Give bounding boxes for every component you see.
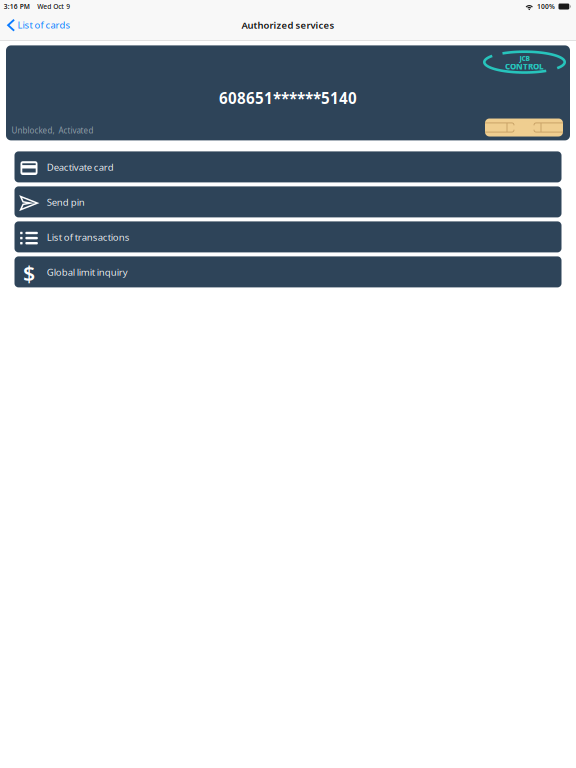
staticText: $ <box>23 259 35 287</box>
button[interactable]: Deactivate card <box>14 151 561 182</box>
button[interactable]: List of cards <box>0 14 70 39</box>
staticText: List of cards <box>17 18 70 31</box>
button[interactable]: Send pin <box>14 186 561 217</box>
staticText: Global limit inquiry <box>47 265 128 278</box>
staticText: Unblocked, Activated <box>11 125 93 136</box>
button[interactable]: $ <box>14 256 561 287</box>
staticText: CONTROL <box>505 61 544 72</box>
staticText: Send pin <box>47 195 85 208</box>
staticText: JCB <box>519 54 529 63</box>
staticText: 100% <box>537 2 555 11</box>
staticText: Authorized services <box>241 19 334 32</box>
staticText: Deactivate card <box>47 160 114 173</box>
staticText: 3:16 PM <box>4 2 30 11</box>
staticText: 608651******5140 <box>219 88 357 108</box>
staticText: Wed Oct 9 <box>37 2 70 11</box>
button[interactable]: List of transactions <box>14 221 561 252</box>
staticText: List of transactions <box>47 230 130 243</box>
